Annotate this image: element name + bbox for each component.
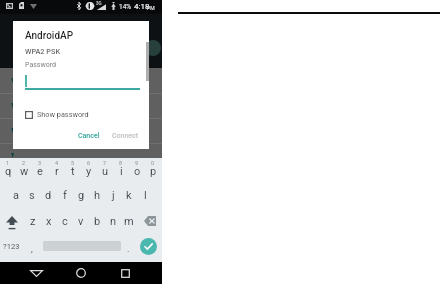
button[interactable]: j [105,186,121,206]
staticText: 6 [87,160,91,166]
button[interactable]: v [73,212,89,232]
staticText: n [110,215,117,228]
staticText: a [13,189,19,202]
staticText: r [55,165,59,178]
button[interactable]: x [41,212,57,232]
staticText: 4:18 [134,2,150,11]
button[interactable]: Space [40,234,122,260]
staticText: 4 [55,160,59,166]
staticText: j [112,189,115,202]
staticText: 2 [22,160,26,166]
staticText: 1 [6,160,10,166]
staticText: Show password [37,110,89,119]
button[interactable]: z [25,212,41,232]
staticText: . [127,244,130,255]
button[interactable]: 1 [0,160,16,182]
staticText: c [62,215,68,228]
button[interactable]: Cancel [74,128,104,144]
staticText: Cancel [78,132,100,140]
staticText: g [78,189,85,202]
button[interactable]: Show password [22,107,92,122]
staticText: t [71,165,75,178]
button[interactable]: a [8,186,24,206]
staticText: e [37,165,43,178]
staticText: v [78,215,84,228]
button[interactable]: 5 [65,160,81,182]
staticText: WPA2 PSK [25,47,61,56]
button[interactable]: Shift [0,210,24,232]
button[interactable]: k [121,186,137,206]
staticText: q [5,165,12,178]
staticText: h [94,189,101,202]
button[interactable]: , [24,234,40,260]
button[interactable]: 9 [129,160,145,182]
staticText: AndroidAP [25,30,74,42]
button[interactable]: 7 [97,160,113,182]
button[interactable]: f [57,186,73,206]
staticText: s [29,189,35,202]
button[interactable]: 3 [32,160,48,182]
staticText: f [63,189,67,202]
button[interactable]: n [105,212,121,232]
button[interactable]: h [89,186,105,206]
staticText: o [134,165,141,178]
button[interactable]: m [121,212,137,232]
button[interactable]: 2 [16,160,32,182]
staticText: 7 [103,160,107,166]
staticText: Password [25,61,56,69]
button[interactable]: l [137,186,153,206]
staticText: i [120,165,123,178]
staticText: Connect [112,132,139,140]
staticText: p [150,165,157,178]
button[interactable]: Connect [108,128,143,144]
staticText: m [124,215,134,228]
button[interactable]: Recent apps [113,262,137,284]
button[interactable]: d [40,186,56,206]
staticText: 3 [38,160,42,166]
staticText: , [31,244,33,255]
staticText: z [30,215,36,228]
staticText: u [102,165,109,178]
button[interactable]: b [89,212,105,232]
button[interactable]: Enter [136,234,162,260]
staticText: 0 [151,160,155,166]
staticText: l [144,189,147,202]
button[interactable]: ?123 [0,234,28,260]
button[interactable]: 4 [49,160,65,182]
staticText: 9 [135,160,139,166]
button[interactable]: s [24,186,40,206]
staticText: 3G [96,1,102,6]
button[interactable]: 8 [113,160,129,182]
staticText: k [126,189,132,202]
staticText: x [46,215,52,228]
button[interactable]: 0 [145,160,161,182]
staticText: b [94,215,101,228]
button[interactable]: . [121,234,136,260]
staticText: 5 [71,160,75,166]
button[interactable]: Home [69,262,93,284]
button[interactable]: c [57,212,73,232]
button[interactable]: Backspace [140,210,162,232]
staticText: w [20,165,29,178]
staticText: d [45,189,52,202]
button[interactable]: g [73,186,89,206]
staticText: PM [147,5,155,11]
staticText: ?123 [3,242,20,251]
staticText: 14% [119,3,132,11]
button[interactable]: Back [24,262,48,284]
staticText: 8 [119,160,123,166]
button[interactable]: 6 [81,160,97,182]
staticText: y [86,165,92,178]
